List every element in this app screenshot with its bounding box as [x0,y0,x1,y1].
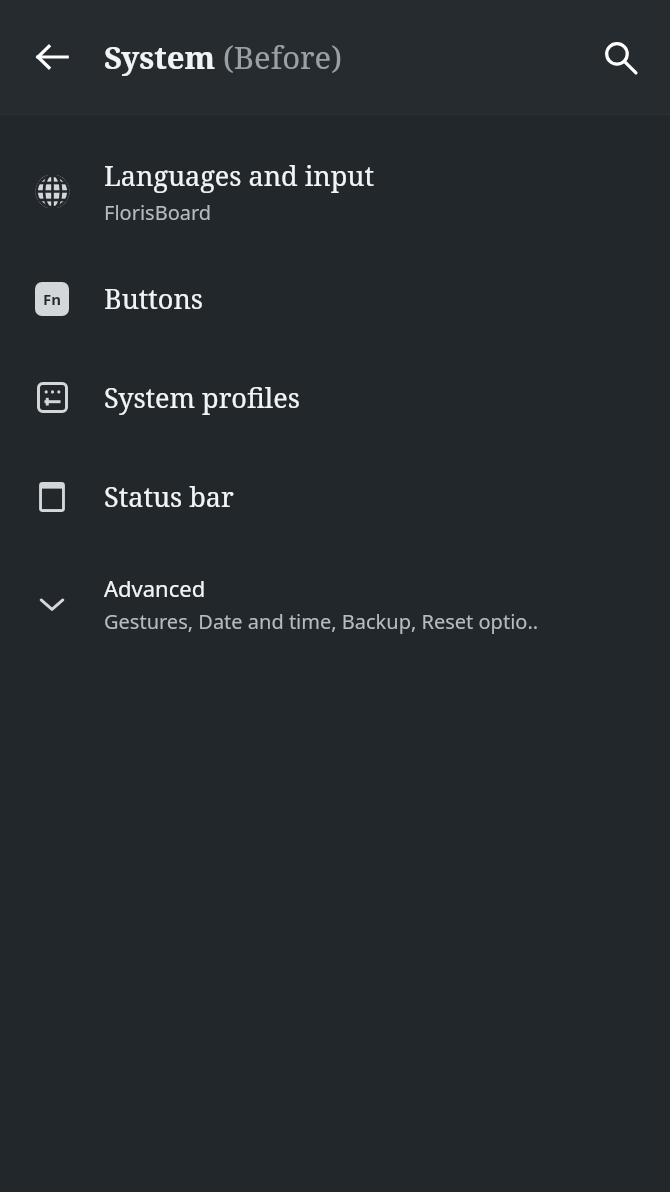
staticText: System (Before) [104,36,342,78]
staticText: Buttons [104,280,203,317]
staticText: System profiles [104,379,300,416]
button[interactable]: Fn [0,249,670,348]
button[interactable]: Languages and input [0,133,670,249]
staticText: Status bar [104,478,234,515]
staticText: FlorisBoard [104,199,212,226]
button[interactable]: System profiles [0,348,670,447]
staticText: Advanced [104,573,206,603]
button[interactable]: Advanced [0,546,670,662]
staticText: Languages and input [104,157,374,194]
staticText: Fn [43,289,61,309]
button[interactable]: Search [570,0,670,114]
button[interactable]: Status bar [0,447,670,546]
button[interactable]: Back [0,0,104,114]
staticText: Gestures, Date and time, Backup, Reset o… [104,608,539,635]
